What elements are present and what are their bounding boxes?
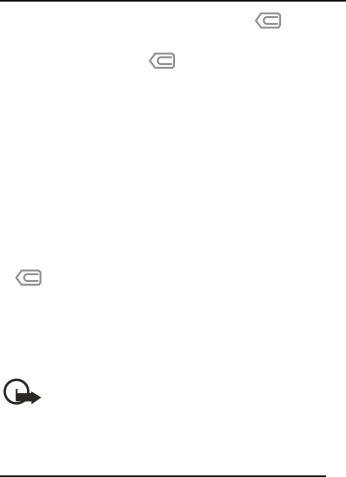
button[interactable]: Clear field	[149, 53, 175, 69]
button[interactable]: Send	[2, 376, 42, 406]
button[interactable]: Clear	[255, 12, 281, 28]
button[interactable]: Clear entry	[15, 270, 41, 286]
